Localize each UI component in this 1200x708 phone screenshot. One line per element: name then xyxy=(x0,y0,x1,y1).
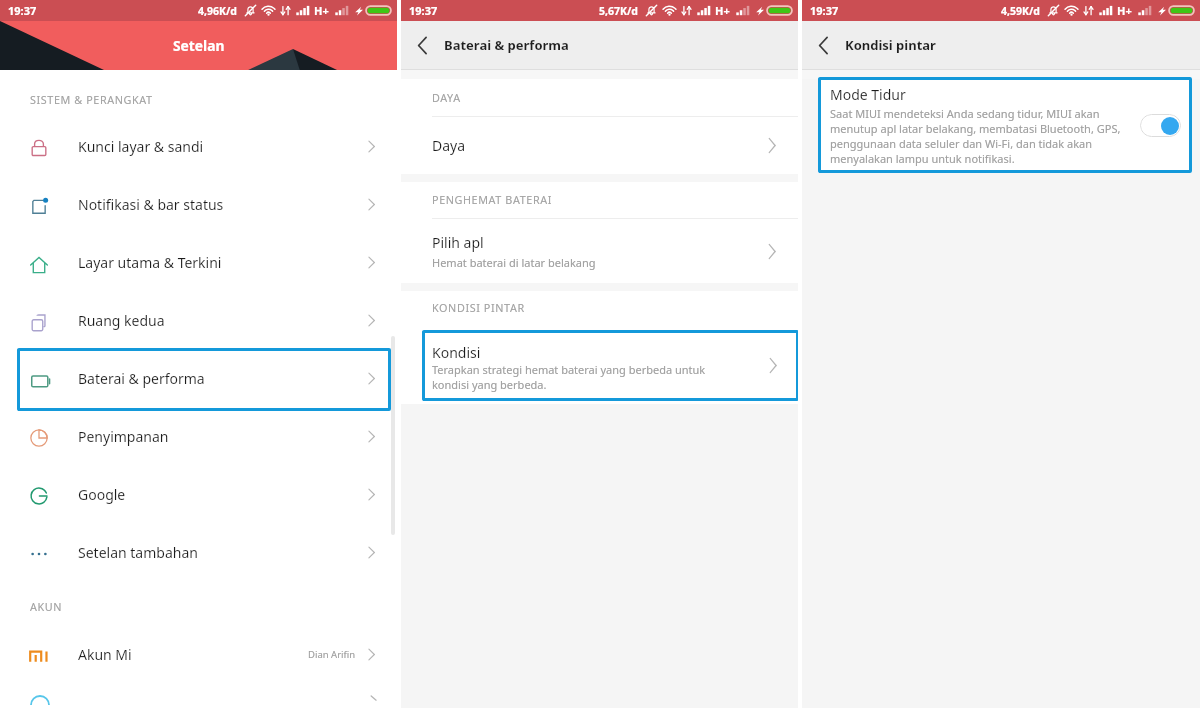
staticText: Daya xyxy=(432,136,765,155)
staticText: Layar utama & Terkini xyxy=(78,253,365,272)
button[interactable]: Setelan tambahan xyxy=(0,523,397,581)
staticText: H+ xyxy=(1117,3,1132,18)
staticText: 5,67K/d xyxy=(599,4,638,18)
staticText: PENGHEMAT BATERAI xyxy=(432,192,552,207)
staticText: AKUN xyxy=(30,599,63,614)
staticText: Ruang kedua xyxy=(78,311,365,330)
staticText: Kondisi xyxy=(432,343,481,362)
staticText: SISTEM & PERANGKAT xyxy=(30,92,153,107)
staticText: Kondisi pintar xyxy=(845,36,936,54)
staticText: Hemat baterai di latar belakang xyxy=(432,255,596,270)
button[interactable]: Google xyxy=(0,465,397,523)
staticText: H+ xyxy=(715,3,730,18)
button[interactable]: Akun Mi xyxy=(0,625,397,683)
button[interactable]: Notifikasi & bar status xyxy=(0,175,397,233)
staticText: KONDISI PINTAR xyxy=(432,300,525,315)
staticText: H+ xyxy=(314,3,329,18)
staticText: Kunci layar & sandi xyxy=(78,137,365,156)
button[interactable]: Mode Tidur xyxy=(818,77,1192,173)
button[interactable]: Kunci layar & sandi xyxy=(0,117,397,175)
staticText: DAYA xyxy=(432,90,461,105)
staticText: Notifikasi & bar status xyxy=(78,195,365,214)
button[interactable]: Back xyxy=(401,21,443,69)
staticText: 4,59K/d xyxy=(1001,4,1040,18)
button[interactable]: Daya xyxy=(401,117,798,174)
button[interactable]: Penyimpanan xyxy=(0,407,397,465)
staticText: Saat MIUI mendeteksi Anda sedang tidur, … xyxy=(830,106,1121,166)
staticText: Mode Tidur xyxy=(830,85,906,104)
button[interactable]: Ruang kedua xyxy=(0,291,397,349)
staticText: Google xyxy=(78,485,365,504)
staticText: 19:37 xyxy=(409,3,438,18)
staticText: Baterai & performa xyxy=(444,36,569,54)
staticText: Baterai & performa xyxy=(78,369,365,388)
staticText: 4,96K/d xyxy=(198,4,237,18)
button[interactable]: Back xyxy=(802,21,844,69)
staticText: Penyimpanan xyxy=(78,427,365,446)
button[interactable]: Layar utama & Terkini xyxy=(0,233,397,291)
button[interactable]: Baterai & performa xyxy=(0,349,397,407)
staticText: Akun Mi xyxy=(78,645,308,664)
button[interactable]: Kondisi xyxy=(422,330,799,401)
staticText: Pilih apl xyxy=(432,233,484,252)
staticText: Setelan tambahan xyxy=(78,543,365,562)
staticText: Terapkan strategi hemat baterai yang ber… xyxy=(432,362,706,392)
staticText: 19:37 xyxy=(8,3,37,18)
button[interactable]: Toggle sleep mode xyxy=(1140,114,1181,137)
staticText: Setelan xyxy=(173,36,225,55)
staticText: Dian Arifin xyxy=(308,648,356,661)
button[interactable]: Pilih apl xyxy=(401,219,798,283)
staticText: 19:37 xyxy=(810,3,839,18)
